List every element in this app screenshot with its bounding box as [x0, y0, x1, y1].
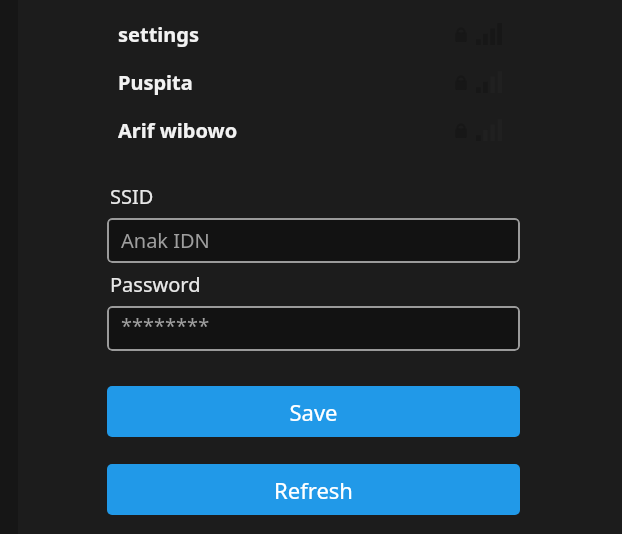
staticText: settings [118, 21, 199, 48]
staticText: Save [289, 397, 338, 427]
staticText: Password [110, 271, 201, 298]
staticText: Puspita [118, 69, 193, 96]
button[interactable]: settings [0, 12, 622, 56]
staticText: Refresh [274, 475, 353, 505]
button[interactable]: Puspita [0, 60, 622, 104]
button[interactable]: Refresh [107, 464, 520, 515]
staticText: SSID [110, 183, 154, 210]
staticText: Anak IDN [121, 227, 210, 254]
button[interactable]: Anak IDN [107, 218, 520, 263]
button[interactable]: Save [107, 386, 520, 437]
button[interactable]: ******** [107, 306, 520, 351]
staticText: Arif wibowo [118, 117, 238, 144]
staticText: ******** [121, 312, 210, 339]
button[interactable]: Arif wibowo [0, 108, 622, 152]
